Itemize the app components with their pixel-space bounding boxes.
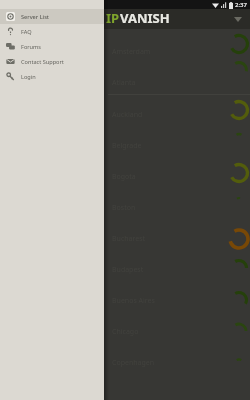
staticText: Forums (21, 43, 41, 51)
staticText: IP (106, 9, 120, 27)
button[interactable]: Amsterdam (112, 36, 250, 67)
staticText: Server List (21, 13, 49, 21)
button[interactable]: Server List (0, 9, 104, 24)
button[interactable]: FAQ (0, 24, 104, 39)
button[interactable]: More options (230, 11, 246, 27)
button[interactable]: Buenos Aires (112, 285, 250, 316)
staticText: FAQ (21, 28, 32, 36)
staticText: 2:37 (235, 1, 247, 9)
button[interactable]: Contact Support (0, 54, 104, 69)
button[interactable]: Forums (0, 39, 104, 54)
button[interactable]: Auckland (112, 99, 250, 130)
button[interactable]: Chicago (112, 316, 250, 347)
button[interactable]: Bogota (112, 161, 250, 192)
staticText: VANISH (120, 9, 170, 27)
staticText: Contact Support (21, 58, 64, 66)
button[interactable]: Budapest (112, 254, 250, 285)
staticText: Login (21, 73, 36, 81)
button[interactable]: Bucharest (112, 223, 250, 254)
button[interactable]: Login (0, 69, 104, 84)
